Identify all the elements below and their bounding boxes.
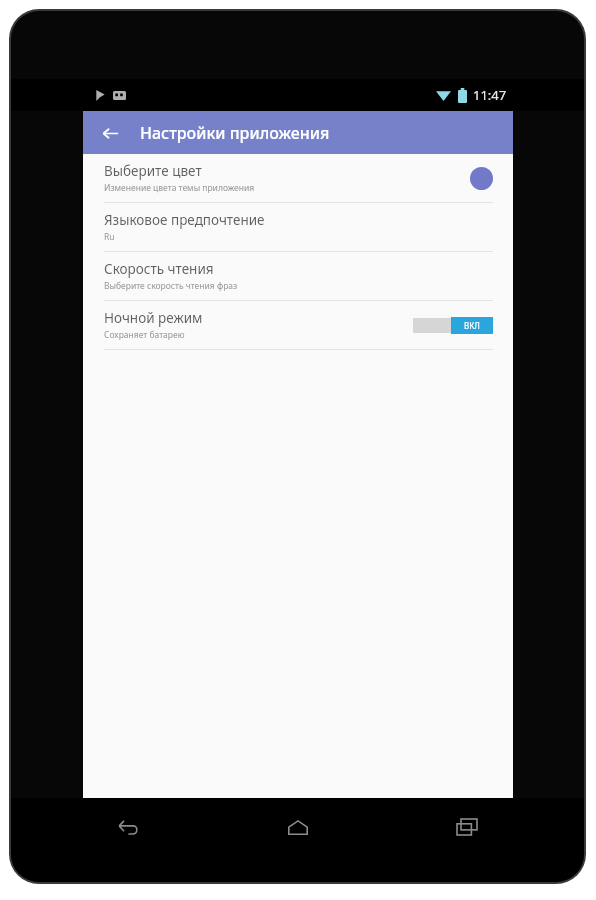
- staticText: Настройки приложения: [140, 122, 330, 144]
- staticText: Ночной режим: [104, 309, 203, 327]
- staticText: Изменение цвета темы приложения: [104, 182, 255, 194]
- staticText: ВКЛ: [464, 320, 480, 331]
- button[interactable]: Home: [277, 806, 319, 848]
- button[interactable]: Скорость чтения: [83, 252, 513, 300]
- staticText: Языковое предпочтение: [104, 211, 265, 229]
- button[interactable]: Выберите цвет: [83, 154, 513, 202]
- button[interactable]: Back: [95, 118, 125, 148]
- staticText: Сохраняет батарею: [104, 329, 185, 341]
- button[interactable]: Recent apps: [446, 806, 488, 848]
- staticText: Выберите цвет: [104, 162, 202, 180]
- staticText: Выберите скорость чтения фраз: [104, 280, 238, 292]
- button[interactable]: Back: [107, 806, 149, 848]
- button[interactable]: Ночной режим: [83, 301, 513, 349]
- button[interactable]: Языковое предпочтение: [83, 203, 513, 251]
- staticText: Ru: [104, 231, 115, 243]
- staticText: Скорость чтения: [104, 260, 214, 278]
- staticText: 11:47: [473, 86, 507, 104]
- button[interactable]: Night mode toggle: [413, 317, 493, 334]
